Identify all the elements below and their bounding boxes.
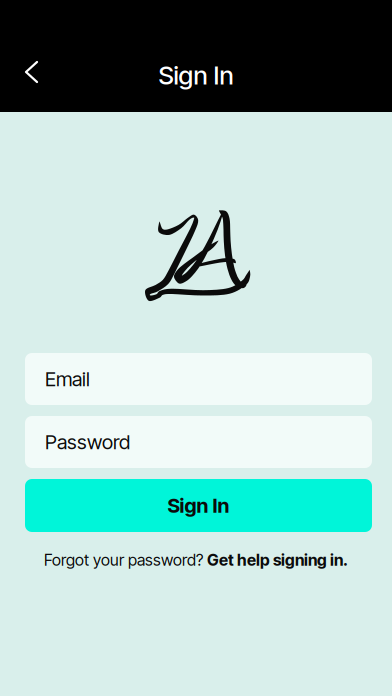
button[interactable]: Sign In <box>25 479 372 532</box>
staticText: Sign In <box>167 493 229 518</box>
button[interactable]: Back <box>0 0 57 102</box>
staticText: Password <box>45 430 130 454</box>
button[interactable]: Email <box>25 353 372 405</box>
button[interactable]: Password <box>25 416 372 468</box>
staticText: Forgot your password? Get help signing i… <box>44 551 348 569</box>
staticText: Email <box>45 367 90 391</box>
button[interactable]: Forgot your password? Get help signing i… <box>0 546 392 574</box>
staticText: Sign In <box>158 60 233 91</box>
